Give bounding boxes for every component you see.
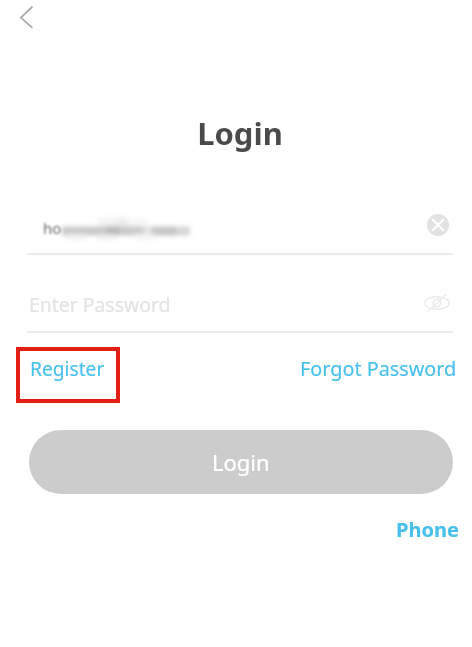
staticText: Phone	[396, 516, 459, 543]
button[interactable]: Clear	[420, 207, 456, 243]
button[interactable]: Login	[29, 430, 453, 494]
button[interactable]: Register	[30, 355, 105, 381]
staticText: Login	[212, 447, 270, 477]
staticText: Register	[30, 355, 105, 381]
button[interactable]: Enter Password	[27, 285, 453, 331]
staticText: Enter Password	[29, 291, 171, 317]
button[interactable]: Forgot Password	[300, 355, 457, 382]
staticText: Login	[27, 112, 453, 154]
button[interactable]: Phone	[396, 516, 459, 543]
button[interactable]: Show password	[418, 284, 456, 322]
staticText: ho	[43, 218, 62, 238]
staticText: Forgot Password	[300, 355, 457, 382]
button[interactable]: Email address	[27, 207, 453, 253]
button[interactable]: Back	[0, 0, 48, 48]
